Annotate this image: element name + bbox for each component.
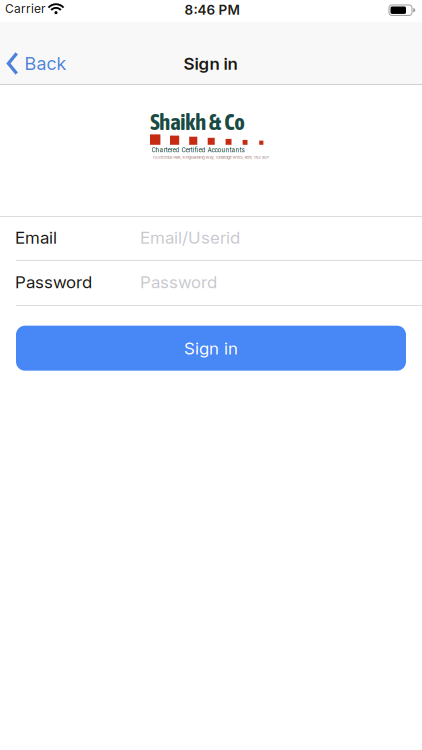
staticText: Carrier <box>5 2 46 16</box>
staticText: Password <box>15 272 92 292</box>
staticText: Shaikh & Co <box>150 109 245 135</box>
staticText: Sign in <box>183 53 237 74</box>
staticText: Password <box>140 272 217 292</box>
staticText: Email/Userid <box>140 227 240 248</box>
staticText: Email <box>15 227 57 248</box>
button[interactable]: Sign in <box>16 326 406 371</box>
staticText: Chartered Certified Accountants <box>151 145 244 154</box>
button[interactable]: Back <box>6 52 66 75</box>
staticText: Sign in <box>184 338 238 358</box>
staticText: Back <box>24 53 66 74</box>
staticText: 8:46 PM <box>184 2 239 18</box>
staticText: 10 Decimus Park, Kingstanding Way, Tunbr… <box>152 155 268 160</box>
